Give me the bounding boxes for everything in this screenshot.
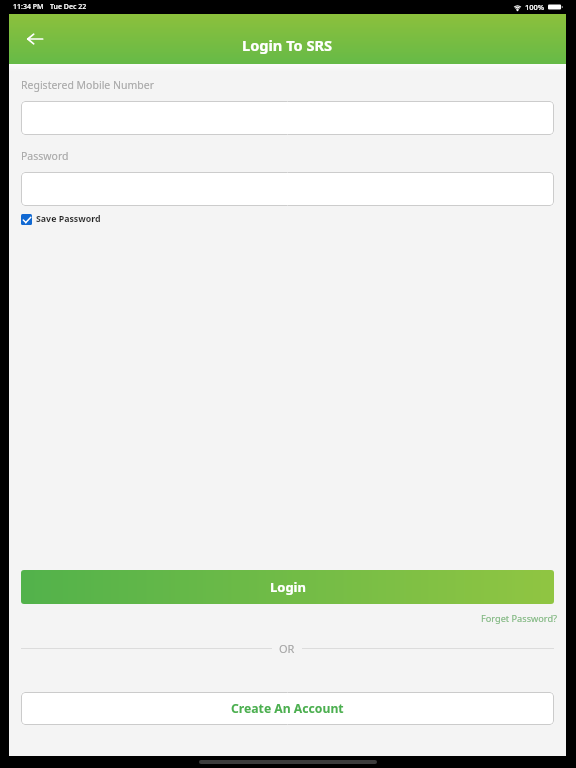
staticText: Registered Mobile Number xyxy=(21,78,155,92)
staticText: Password xyxy=(21,149,69,163)
button[interactable] xyxy=(21,172,554,206)
staticText: Save Password xyxy=(36,213,101,225)
staticText: Forget Password? xyxy=(481,612,558,625)
staticText: Login To SRS xyxy=(242,35,333,55)
staticText: Login xyxy=(270,578,306,596)
staticText: OR xyxy=(279,641,295,656)
button[interactable]: Back xyxy=(20,24,50,54)
staticText: Tue Dec 22 xyxy=(50,2,87,12)
button[interactable]: Login xyxy=(21,570,554,604)
button[interactable]: Forget Password? xyxy=(479,611,560,626)
staticText: 100% xyxy=(525,2,545,12)
button[interactable]: Create An Account xyxy=(21,692,554,725)
staticText: Create An Account xyxy=(231,700,344,717)
button[interactable]: Save Password xyxy=(21,213,101,225)
button[interactable] xyxy=(21,101,554,135)
staticText: 11:34 PM xyxy=(13,2,44,12)
